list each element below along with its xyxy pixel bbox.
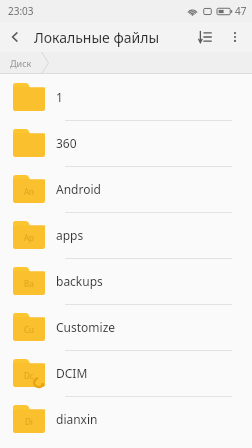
staticText: apps — [56, 227, 84, 243]
staticText: dianxin — [56, 411, 98, 427]
staticText: Cu — [24, 324, 34, 335]
staticText: Ap — [24, 232, 35, 243]
staticText: DCIM — [56, 365, 88, 381]
staticText: 47 — [235, 4, 247, 18]
button[interactable]: Dc — [0, 350, 252, 396]
button[interactable]: Back — [0, 22, 30, 52]
staticText: 1 — [56, 89, 63, 105]
staticText: Android — [56, 181, 101, 197]
button[interactable]: Диск — [10, 57, 32, 69]
staticText: Dc — [24, 370, 34, 381]
staticText: backups — [56, 273, 103, 289]
staticText: Ba — [24, 278, 34, 289]
staticText: Локальные файлы — [34, 28, 160, 47]
button[interactable]: Ap — [0, 212, 252, 258]
button[interactable]: Di — [0, 396, 252, 442]
button[interactable]: An — [0, 166, 252, 212]
staticText: 360 — [56, 135, 77, 151]
staticText: Customize — [56, 319, 116, 335]
button[interactable]: 360 — [0, 120, 252, 166]
staticText: An — [24, 186, 35, 197]
button[interactable]: 1 — [0, 74, 252, 120]
staticText: 23:03 — [8, 4, 34, 18]
button[interactable]: Ba — [0, 258, 252, 304]
button[interactable]: Cu — [0, 304, 252, 350]
button[interactable]: Sort — [190, 22, 220, 52]
button[interactable]: More options — [220, 22, 250, 52]
staticText: Di — [25, 416, 33, 427]
